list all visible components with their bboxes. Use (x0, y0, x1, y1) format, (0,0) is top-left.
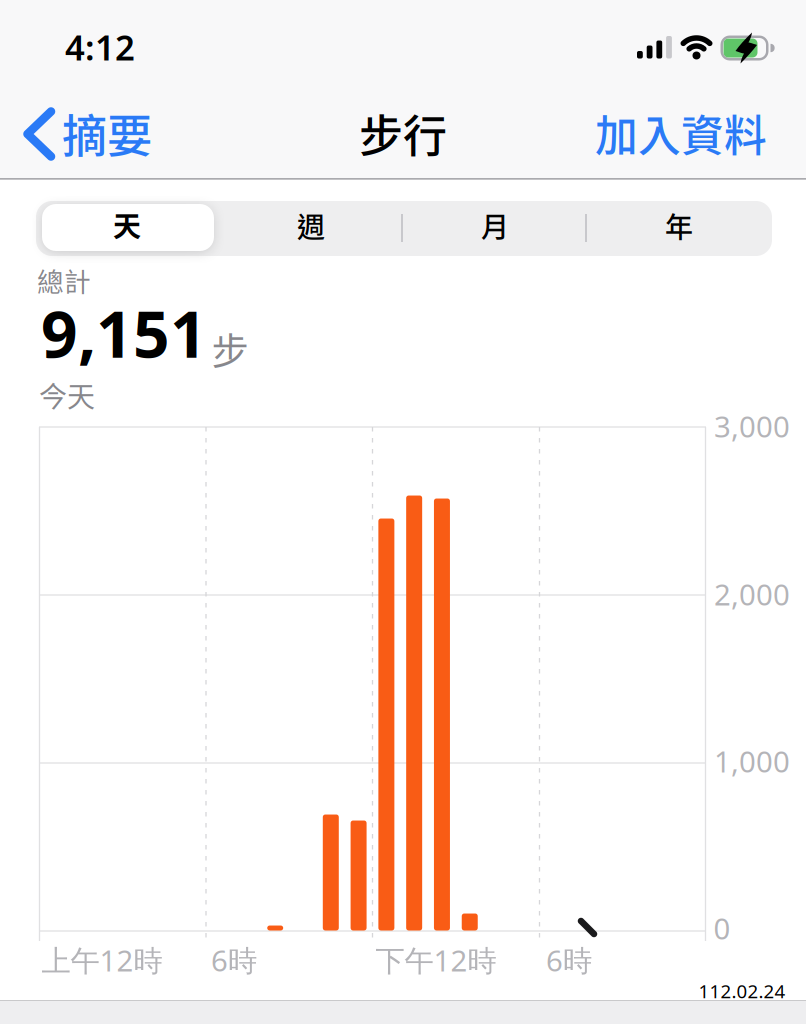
staticText: 6時 (546, 940, 592, 979)
button[interactable]: 天 (42, 204, 214, 251)
staticText: 今天 (39, 375, 95, 415)
staticText: 天 (113, 204, 141, 245)
staticText: 下午12時 (375, 940, 496, 979)
staticText: 112.02.24 (698, 979, 785, 1003)
staticText: 9,151 (41, 290, 207, 375)
button[interactable]: 加入資料 (595, 102, 767, 164)
staticText: 6時 (211, 940, 257, 979)
button[interactable]: 週 (221, 200, 401, 250)
staticText: 3,000 (714, 406, 790, 445)
staticText: 步 (211, 322, 248, 376)
staticText: 上午12時 (41, 940, 162, 979)
staticText: 月 (481, 205, 509, 246)
staticText: 摘要 (62, 100, 152, 166)
staticText: 總計 (37, 261, 91, 299)
staticText: 年 (665, 205, 693, 246)
button[interactable]: 返回摘要 (10, 101, 170, 167)
staticText: 2,000 (714, 574, 790, 613)
staticText: 週 (297, 205, 325, 246)
button[interactable]: 年 (589, 200, 769, 250)
staticText: 步行 (359, 101, 447, 165)
staticText: 1,000 (714, 741, 790, 780)
staticText: 加入資料 (595, 102, 767, 164)
button[interactable]: 月 (405, 200, 585, 250)
staticText: 4:12 (65, 24, 135, 70)
staticText: 0 (713, 908, 730, 947)
